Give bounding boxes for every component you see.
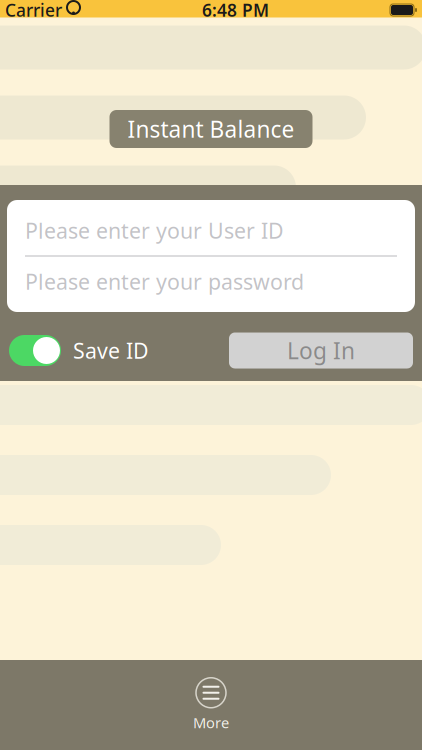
button[interactable]: Log In	[229, 332, 413, 368]
staticText: OF ORRICK	[184, 48, 292, 75]
staticText: 6:48 PM	[202, 0, 269, 21]
staticText: Log In	[287, 335, 355, 365]
staticText: Instant Balance	[127, 114, 294, 144]
staticText: Save ID	[73, 336, 149, 365]
staticText: Please enter your password	[25, 267, 304, 296]
staticText: Carrier	[5, 0, 62, 21]
button[interactable]: More	[166, 676, 256, 734]
staticText	[61, 0, 67, 25]
staticText: Please enter your User ID	[25, 216, 284, 245]
button[interactable]: Save ID	[9, 329, 149, 372]
staticText: More	[193, 713, 229, 732]
staticText: THE BANK	[184, 21, 283, 48]
button[interactable]: Instant Balance	[109, 110, 312, 148]
button[interactable]: Please enter your User ID	[7, 205, 415, 255]
button[interactable]: Please enter your password	[7, 256, 415, 306]
